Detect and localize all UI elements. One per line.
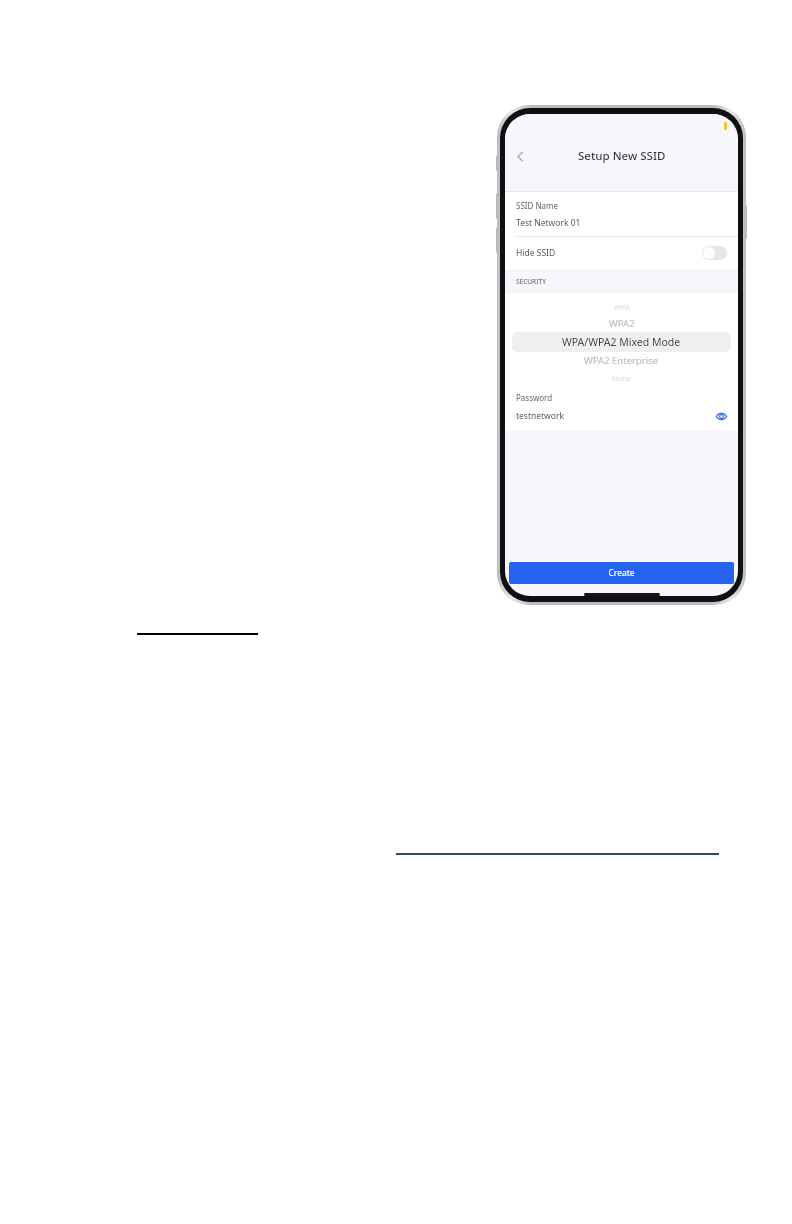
- button[interactable]: Create: [509, 562, 734, 584]
- button[interactable]: WPA/WPA2 Mixed Mode: [512, 332, 731, 352]
- staticText: Hide SSID: [516, 247, 556, 259]
- button[interactable]: Show password: [714, 409, 728, 423]
- staticText: SSID Name: [516, 200, 558, 211]
- staticText: testnetwork: [516, 410, 564, 422]
- staticText: Create: [608, 567, 635, 579]
- staticText: Test Network 01: [516, 217, 581, 229]
- button[interactable]: Hide SSID: [505, 237, 738, 269]
- staticText: WPA2: [609, 317, 635, 330]
- staticText: WPA/WPA2 Mixed Mode: [562, 335, 681, 349]
- button[interactable]: Back: [505, 141, 535, 171]
- button[interactable]: Hide SSID toggle: [702, 246, 727, 260]
- staticText: Password: [516, 392, 738, 403]
- staticText: SECURITY: [516, 277, 546, 286]
- staticText: Setup New SSID: [578, 148, 666, 164]
- staticText: WPA2 Enterprise: [584, 354, 659, 367]
- button[interactable]: Test Network 01: [505, 217, 738, 236]
- button[interactable]: WPA2: [512, 315, 731, 332]
- staticText: None: [612, 373, 632, 383]
- button[interactable]: WPA2 Enterprise: [512, 352, 731, 369]
- button[interactable]: testnetwork: [505, 409, 738, 431]
- staticText: WPA: [614, 302, 630, 312]
